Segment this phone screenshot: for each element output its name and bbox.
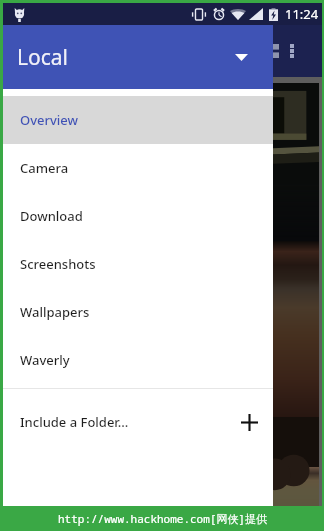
staticText: 11:24 — [285, 5, 319, 23]
button[interactable]: Wallpapers — [3, 288, 273, 336]
staticText: http://www.hackhome.com[网侠]提供 — [58, 511, 267, 526]
staticText: Include a Folder... — [20, 413, 236, 431]
staticText: Camera — [20, 159, 69, 177]
staticText: Screenshots — [20, 255, 96, 273]
button[interactable]: Screenshots — [3, 240, 273, 288]
button[interactable]: Include a Folder... — [3, 398, 273, 446]
staticText: Local — [17, 43, 68, 72]
staticText: Wallpapers — [20, 303, 90, 321]
button[interactable]: Overview — [3, 96, 273, 144]
staticText: Download — [20, 207, 83, 225]
button[interactable]: Waverly — [3, 336, 273, 384]
button[interactable]: Camera — [3, 144, 273, 192]
button[interactable]: Download — [3, 192, 273, 240]
staticText: Waverly — [20, 351, 70, 369]
button[interactable]: Expand folder list — [228, 44, 254, 70]
staticText: Overview — [20, 111, 79, 129]
button[interactable]: More options — [277, 36, 307, 66]
